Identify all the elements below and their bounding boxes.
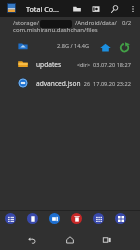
button[interactable]: Select folder <box>70 0 83 17</box>
button[interactable]: File details <box>93 213 104 224</box>
staticText: 17.09.20 23:22 <box>93 80 131 88</box>
button[interactable]: Properties <box>5 213 16 224</box>
staticText: updates <box>36 60 62 69</box>
button[interactable]: advanced.json <box>0 74 140 93</box>
button[interactable]: Search <box>108 0 121 17</box>
button[interactable]: Up one level <box>0 37 140 55</box>
staticText: Total Co... <box>26 4 59 14</box>
button[interactable]: Select all <box>115 213 126 224</box>
staticText: com.mishiranu.dashchan/files <box>13 26 98 34</box>
staticText: /storage/ <box>13 19 39 27</box>
staticText: 0/2 <box>122 19 132 27</box>
button[interactable]: Recent apps <box>98 231 116 249</box>
button[interactable]: Back <box>23 231 41 249</box>
staticText: 03.07.20 18:27 <box>93 61 131 69</box>
button[interactable]: updates <box>0 55 140 74</box>
button[interactable]: More options <box>126 0 139 17</box>
button[interactable]: Home folder <box>100 42 111 53</box>
button[interactable]: Delete <box>71 213 82 224</box>
staticText: advanced.json <box>36 79 81 88</box>
button[interactable]: Copy <box>27 213 38 224</box>
button[interactable]: Refresh <box>119 42 130 53</box>
staticText: 2.8G / 14.4G <box>57 42 90 50</box>
staticText: /Android/data/ <box>75 19 117 27</box>
button[interactable]: Move <box>49 213 60 224</box>
staticText: 26 <box>62 80 90 87</box>
button[interactable]: Home <box>61 231 79 249</box>
button[interactable]: Total Commander <box>0 0 140 17</box>
staticText: <dir> <box>62 61 90 68</box>
button[interactable]: Hidden files <box>89 0 102 17</box>
